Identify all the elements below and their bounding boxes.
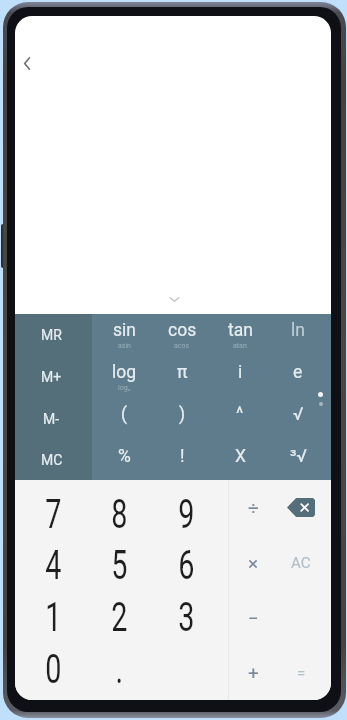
- staticText: e: [293, 362, 303, 383]
- button[interactable]: e: [269, 356, 327, 398]
- staticText: cos: [168, 320, 197, 341]
- button[interactable]: !: [153, 440, 211, 480]
- button[interactable]: X: [211, 440, 269, 480]
- staticText: acos: [174, 342, 190, 350]
- button[interactable]: Back: [15, 47, 43, 79]
- staticText: 0: [45, 646, 62, 693]
- staticText: −: [248, 607, 259, 629]
- button[interactable]: cos: [153, 314, 211, 356]
- staticText: 4: [45, 542, 62, 589]
- button[interactable]: tan: [211, 314, 269, 356]
- button[interactable]: 4: [20, 540, 86, 591]
- staticText: 3: [178, 594, 195, 641]
- button[interactable]: log: [95, 356, 153, 398]
- staticText: M+: [41, 369, 62, 385]
- button[interactable]: 8: [86, 489, 153, 540]
- staticText: ×: [248, 552, 259, 574]
- staticText: AC: [291, 554, 311, 572]
- button[interactable]: =: [277, 645, 325, 700]
- staticText: 2: [111, 594, 128, 641]
- staticText: i: [238, 362, 243, 383]
- staticText: %: [118, 446, 131, 467]
- button[interactable]: ^: [211, 398, 269, 440]
- button[interactable]: %: [95, 440, 153, 480]
- button[interactable]: AC: [277, 535, 325, 590]
- staticText: 8: [111, 491, 128, 538]
- button[interactable]: ): [153, 398, 211, 440]
- staticText: ³√: [290, 446, 307, 467]
- staticText: =: [297, 664, 306, 682]
- staticText: ^: [236, 404, 244, 425]
- staticText: !: [180, 446, 185, 467]
- button[interactable]: MR: [15, 314, 92, 356]
- button[interactable]: .: [86, 643, 153, 695]
- staticText: tan: [228, 320, 253, 341]
- button[interactable]: −: [229, 590, 277, 645]
- button[interactable]: M+: [15, 356, 92, 398]
- button[interactable]: i: [211, 356, 269, 398]
- button[interactable]: 2: [86, 591, 153, 643]
- staticText: 6: [178, 542, 195, 589]
- button[interactable]: 6: [153, 540, 220, 591]
- staticText: MR: [41, 327, 62, 343]
- button[interactable]: π: [153, 356, 211, 398]
- staticText: 5: [111, 542, 128, 589]
- button[interactable]: 3: [153, 591, 220, 643]
- button[interactable]: Backspace: [277, 480, 325, 535]
- staticText: asin: [118, 342, 131, 350]
- staticText: sin: [113, 320, 136, 341]
- button[interactable]: 0: [20, 643, 86, 695]
- staticText: π: [177, 362, 188, 383]
- staticText: log₂: [118, 384, 131, 392]
- button[interactable]: 9: [153, 489, 220, 540]
- button[interactable]: ×: [229, 535, 277, 590]
- staticText: log: [112, 362, 137, 383]
- staticText: 7: [45, 491, 62, 538]
- button[interactable]: ÷: [229, 480, 277, 535]
- staticText: X: [235, 446, 246, 467]
- staticText: M-: [43, 411, 60, 427]
- button[interactable]: 5: [86, 540, 153, 591]
- staticText: ): [179, 404, 186, 425]
- staticText: +: [248, 662, 259, 684]
- staticText: ÷: [248, 497, 259, 519]
- button[interactable]: M-: [15, 398, 92, 440]
- button[interactable]: √: [269, 398, 327, 440]
- button[interactable]: MC: [15, 440, 92, 480]
- button[interactable]: ln: [269, 314, 327, 356]
- staticText: .: [115, 646, 123, 693]
- button[interactable]: 7: [20, 489, 86, 540]
- staticText: 9: [178, 491, 195, 538]
- button[interactable]: +: [229, 645, 277, 700]
- other: Backspace: [287, 498, 315, 517]
- button[interactable]: 1: [20, 591, 86, 643]
- button[interactable]: Collapse keypad: [163, 288, 185, 310]
- button[interactable]: sin: [95, 314, 153, 356]
- button[interactable]: ³√: [269, 440, 327, 480]
- staticText: MC: [41, 452, 63, 468]
- staticText: 1: [45, 594, 62, 641]
- staticText: √: [293, 404, 304, 425]
- staticText: ln: [291, 320, 305, 341]
- staticText: atan: [233, 342, 247, 350]
- button[interactable]: (: [95, 398, 153, 440]
- staticText: (: [121, 404, 127, 425]
